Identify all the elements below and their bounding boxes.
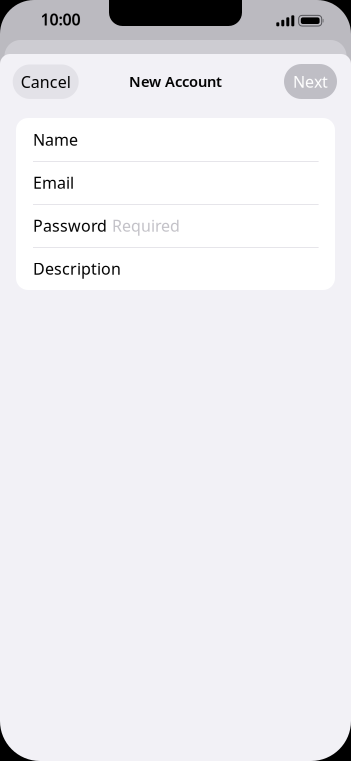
button[interactable]: Cancel	[13, 64, 79, 99]
staticText: Name	[33, 129, 78, 150]
button[interactable]: Next	[284, 64, 337, 99]
staticText: Cancel	[21, 71, 71, 92]
staticText: Password	[33, 215, 107, 236]
button[interactable]: Description	[16, 247, 335, 289]
button[interactable]: Name	[16, 118, 335, 160]
staticText: Email	[33, 172, 74, 193]
staticText: 10:00	[40, 9, 80, 30]
staticText: New Account	[129, 72, 222, 91]
staticText: Description	[33, 258, 121, 279]
staticText: Next	[293, 71, 328, 92]
button[interactable]: Password	[16, 204, 335, 246]
staticText: Required	[112, 215, 180, 236]
button[interactable]: Email	[16, 161, 335, 203]
